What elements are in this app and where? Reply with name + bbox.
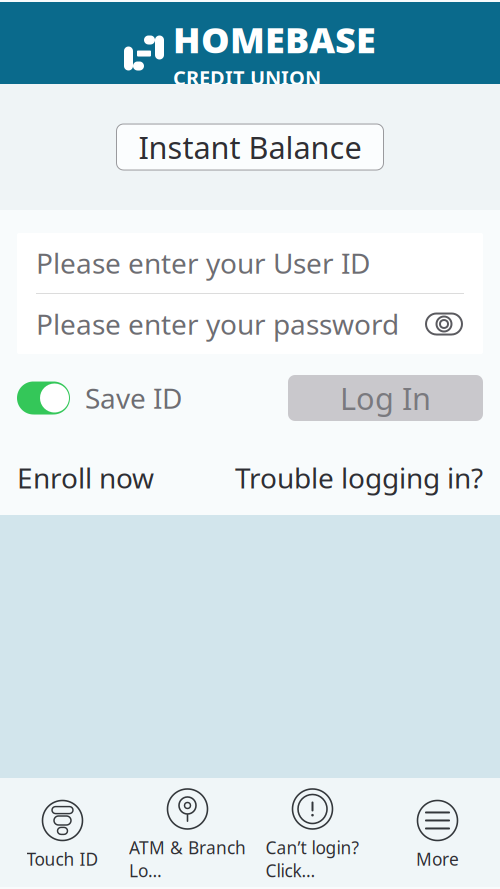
- staticText: HOMEBASE: [173, 15, 376, 63]
- button[interactable]: Can't login? Click here: [250, 779, 375, 889]
- staticText: Enroll now: [17, 459, 154, 496]
- staticText: Please enter your User ID: [36, 244, 370, 282]
- button[interactable]: Please enter your password: [17, 294, 483, 354]
- staticText: Save ID: [85, 379, 182, 417]
- staticText: Trouble logging in?: [235, 459, 483, 496]
- button[interactable]: Touch ID: [0, 790, 125, 880]
- button[interactable]: More: [375, 790, 500, 880]
- staticText: Can’t login? Click…: [265, 836, 359, 882]
- staticText: Instant Balance: [138, 127, 361, 167]
- button[interactable]: Save ID: [17, 375, 182, 421]
- staticText: Carrier: [8, 0, 72, 4]
- staticText: Log In: [340, 378, 431, 418]
- staticText: Please enter your password: [36, 305, 399, 343]
- button[interactable]: Log In: [288, 375, 483, 421]
- staticText: ATM & Branch Lo…: [129, 836, 246, 882]
- button[interactable]: Please enter your User ID: [17, 233, 483, 293]
- button[interactable]: Enroll now: [17, 455, 154, 500]
- staticText: 7:30 AM: [242, 0, 316, 4]
- button[interactable]: Instant Balance: [116, 124, 383, 170]
- button[interactable]: ATM and Branch Locator: [125, 779, 250, 889]
- staticText: CREDIT UNION: [173, 64, 321, 91]
- staticText: Touch ID: [26, 847, 98, 870]
- staticText: More: [416, 847, 459, 870]
- button[interactable]: Trouble logging in?: [235, 455, 483, 500]
